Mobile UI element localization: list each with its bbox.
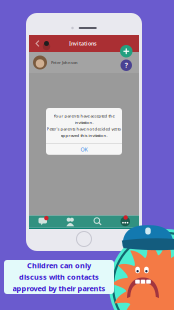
staticText: OK: [80, 146, 87, 153]
button[interactable]: Search: [84, 215, 111, 227]
button[interactable]: Help: [120, 59, 132, 71]
staticText: approved this invitation.: [60, 133, 107, 138]
button[interactable]: Profile: [42, 37, 51, 49]
button[interactable]: Account: [111, 215, 139, 227]
button[interactable]: Back: [33, 36, 42, 51]
staticText: discuss with contacts: [19, 272, 99, 282]
staticText: Children can only: [27, 260, 91, 270]
staticText: Peter's parents have not decided yet to: [46, 126, 121, 132]
staticText: approved by their parents: [12, 283, 105, 293]
button[interactable]: Messages: [29, 215, 56, 227]
staticText: Peter Johnson: [51, 60, 78, 65]
button[interactable]: OK: [46, 144, 122, 155]
button[interactable]: New invitation: [120, 45, 132, 57]
button[interactable]: Groups: [56, 215, 84, 227]
staticText: invitation.: [74, 119, 93, 125]
staticText: Your parents have accepted the: [53, 113, 114, 119]
staticText: ?: [125, 61, 128, 70]
staticText: Invitations: [69, 40, 97, 47]
